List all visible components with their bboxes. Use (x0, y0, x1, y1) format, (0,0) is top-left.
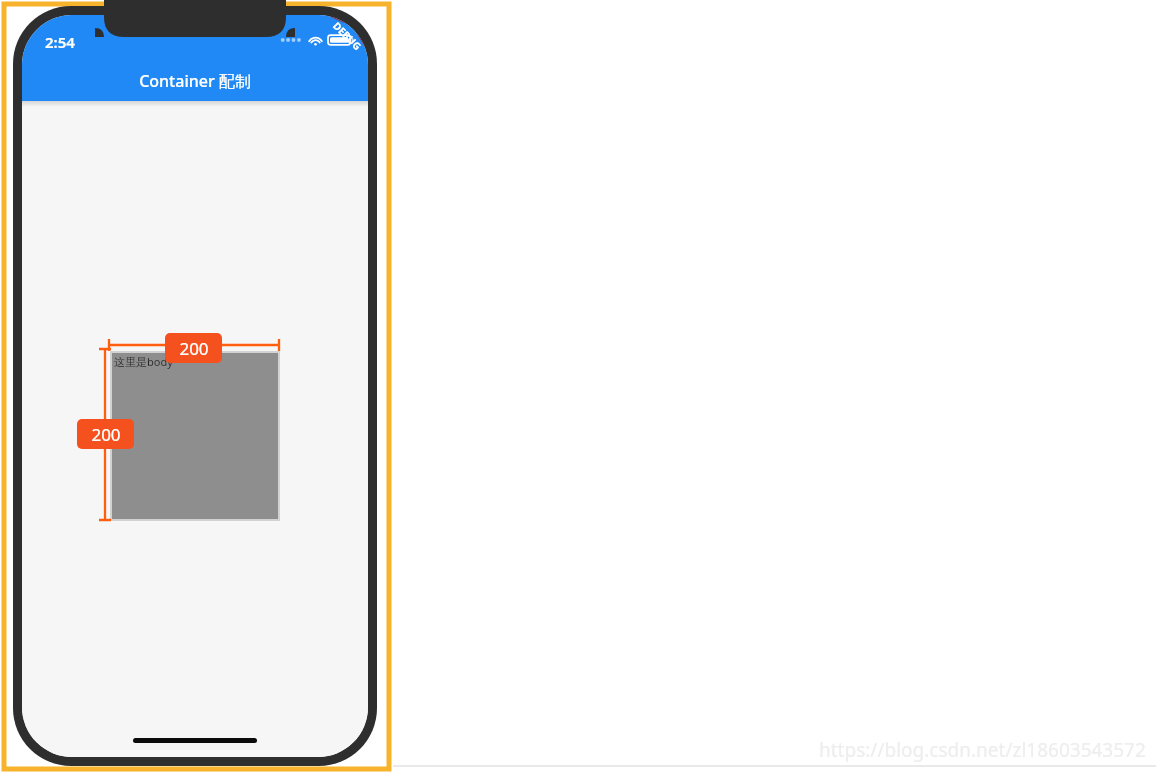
button[interactable]: dimension 200 (165, 333, 222, 363)
button[interactable]: dimension 200 (77, 419, 134, 449)
staticText: 这里是body (114, 354, 173, 369)
staticText: https://blog.csdn.net/zl18603543572 (819, 737, 1146, 763)
staticText: 2:54 (45, 32, 75, 52)
staticText: Container 配制 (139, 70, 251, 92)
button[interactable]: 这里是body (112, 353, 278, 519)
staticText: 200 (91, 423, 121, 446)
staticText: 200 (179, 337, 209, 360)
staticText: DEBUG (330, 19, 365, 53)
